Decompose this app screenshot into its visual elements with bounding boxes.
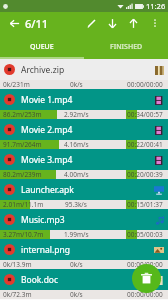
staticText: QUEUE <box>30 42 54 52</box>
staticText: 6/11 <box>25 16 49 31</box>
button[interactable]: Edit <box>81 13 101 33</box>
staticText: 2.01m/11.1m <box>3 200 44 209</box>
staticText: 0k/13.9m <box>3 260 32 269</box>
staticText: Music.mp3 <box>21 214 65 226</box>
button[interactable]: Delete <box>132 264 161 293</box>
button[interactable]: More options <box>145 13 165 33</box>
staticText: 00:00/00:00 <box>127 80 163 89</box>
staticText: 11:26 <box>146 1 166 11</box>
button[interactable]: QUEUE <box>0 34 84 59</box>
staticText: 95.3k/s <box>65 200 87 209</box>
staticText: Movie 3.mp4 <box>21 154 73 166</box>
staticText: 80.2m/239m <box>3 170 42 179</box>
staticText: 00:20/00:39 <box>127 170 163 179</box>
staticText: Movie 2.mp4 <box>21 124 73 136</box>
button[interactable]: Book.doc <box>0 269 168 299</box>
staticText: 3.27m/10.7m <box>3 230 44 239</box>
button[interactable]: Launcher.apk <box>0 179 168 209</box>
staticText: 1.99m/s <box>64 230 89 239</box>
button[interactable]: Movie 2.mp4 <box>0 119 168 149</box>
staticText: 00:15/01:37 <box>127 200 163 209</box>
staticText: internal.png <box>21 244 71 256</box>
staticText: 4.16m/s <box>64 140 89 149</box>
staticText: 91.7m/264m <box>3 140 42 149</box>
staticText: 00:00/00:00 <box>127 290 163 299</box>
button[interactable]: Movie 3.mp4 <box>0 149 168 179</box>
staticText: 2.92m/s <box>64 110 89 119</box>
staticText: 0k/s <box>70 290 83 299</box>
staticText: 0k/s <box>70 80 83 89</box>
staticText: 0k/s <box>70 260 83 269</box>
button[interactable]: Archive.zip <box>0 59 168 89</box>
button[interactable]: Upload <box>123 13 143 33</box>
staticText: 4.00m/s <box>64 170 89 179</box>
staticText: FINISHED <box>110 42 143 52</box>
button[interactable]: internal.png <box>0 239 168 269</box>
button[interactable]: Back <box>4 13 24 33</box>
staticText: 0k/72.3m <box>3 290 32 299</box>
staticText: 86.2m/253m <box>3 110 42 119</box>
button[interactable]: FINISHED <box>84 34 168 59</box>
button[interactable]: Music.mp3 <box>0 209 168 239</box>
staticText: 00:00/00:00 <box>127 260 163 269</box>
staticText: 00:34/00:57 <box>127 110 163 119</box>
staticText: Archive.zip <box>21 64 65 76</box>
staticText: Launcher.apk <box>21 184 74 196</box>
button[interactable]: Download <box>102 13 122 33</box>
button[interactable]: Movie 1.mp4 <box>0 89 168 119</box>
staticText: 0k/231m <box>3 80 30 89</box>
staticText: 00:22/00:41 <box>127 140 163 149</box>
staticText: Book.doc <box>21 274 59 286</box>
staticText: Movie 1.mp4 <box>21 94 73 106</box>
staticText: 00:05/00:03 <box>127 230 163 239</box>
